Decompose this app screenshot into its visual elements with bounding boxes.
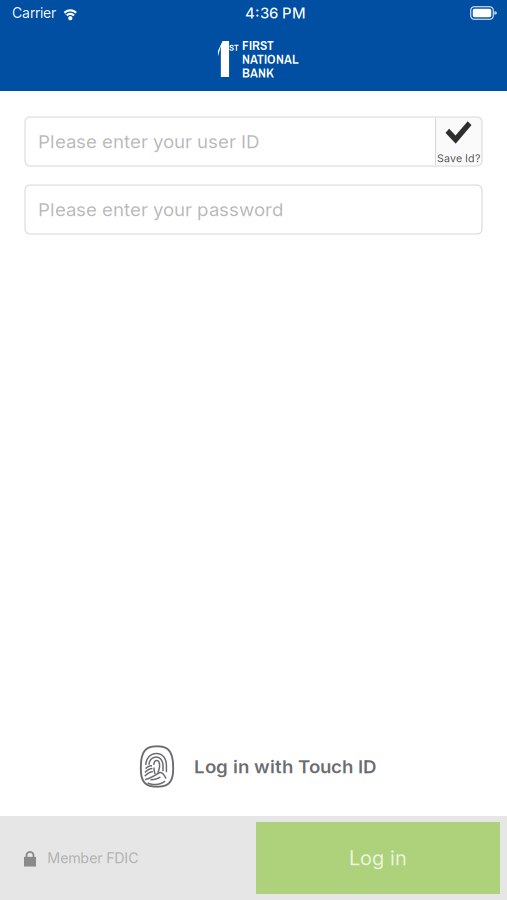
staticText: BANK: [242, 64, 274, 82]
button[interactable]: Log in with Touch ID: [131, 745, 376, 788]
staticText: Please enter your user ID: [38, 130, 259, 153]
button[interactable]: Log in: [256, 822, 500, 894]
staticText: Save Id?: [437, 152, 480, 165]
staticText: Log in: [349, 846, 407, 870]
staticText: FIRST: [242, 36, 274, 54]
staticText: 4:36 PM: [245, 4, 306, 22]
staticText: Please enter your password: [38, 198, 283, 221]
staticText: Carrier: [12, 4, 56, 21]
staticText: Log in with Touch ID: [194, 755, 376, 778]
button[interactable]: Save Id: [435, 118, 482, 165]
staticText: NATIONAL: [242, 50, 299, 68]
staticText: Member FDIC: [47, 849, 138, 867]
staticText: ST: [229, 41, 239, 54]
